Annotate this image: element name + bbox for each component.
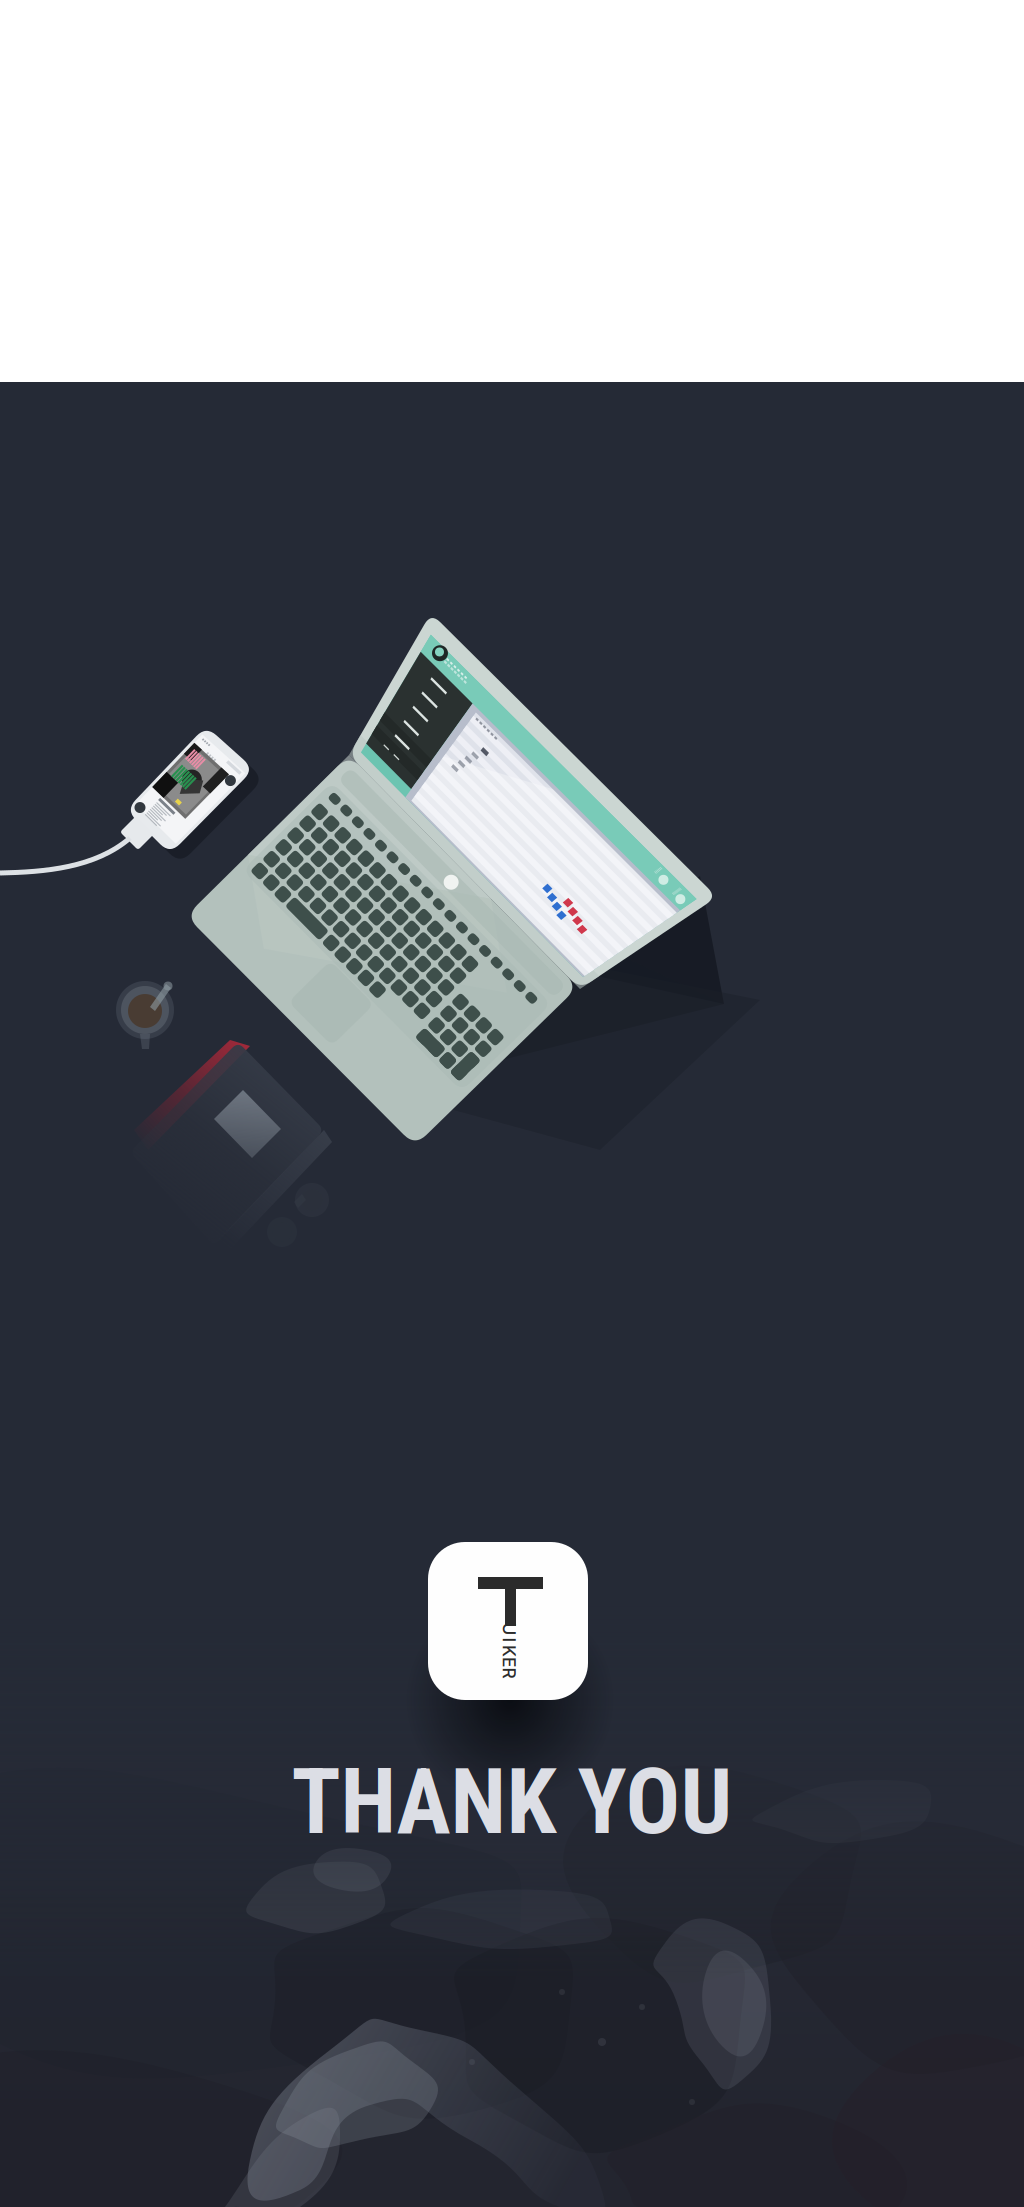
staticText: U [502,1618,515,1639]
staticText: I [506,1629,511,1650]
staticText: K [503,1640,515,1661]
staticText: THANK YOU [291,1749,732,1855]
staticText: R [503,1662,514,1683]
button[interactable]: Tuiker [0,0,1024,2207]
staticText: E [504,1651,514,1672]
